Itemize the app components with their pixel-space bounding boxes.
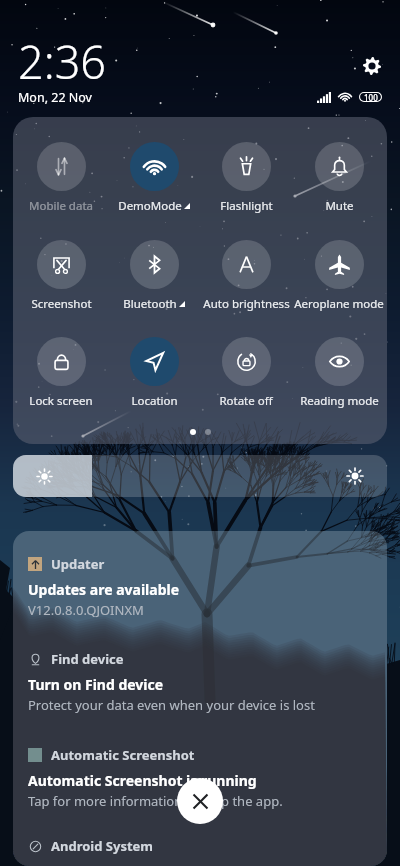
button[interactable]: Brightness — [13, 455, 387, 497]
staticText: Location — [131, 393, 178, 409]
staticText: Auto brightness — [203, 296, 290, 312]
button[interactable]: Close notifications — [177, 778, 223, 824]
staticText: Reading mode — [300, 393, 379, 409]
staticText: 2:36 — [18, 31, 107, 92]
staticText: Screenshot — [31, 296, 92, 312]
staticText: Aeroplane mode — [294, 296, 384, 312]
button[interactable]: Auto brightness — [201, 240, 291, 312]
button[interactable]: Screenshot — [16, 240, 106, 312]
staticText: Mon, 22 Nov — [18, 89, 92, 106]
staticText: Automatic Screenshot — [51, 746, 195, 764]
button[interactable]: Flashlight — [201, 142, 291, 214]
staticText: V12.0.8.0.QJOINXM — [28, 601, 144, 619]
button[interactable]: Aeroplane mode — [294, 240, 384, 312]
button[interactable]: Reading mode — [294, 337, 384, 409]
button[interactable]: Automatic Screenshot — [13, 746, 387, 810]
button[interactable]: Mobile data — [16, 142, 106, 214]
button[interactable]: Lock screen — [16, 337, 106, 409]
button[interactable]: Rotate off — [201, 337, 291, 409]
staticText: Updates are available — [28, 580, 180, 599]
staticText: Rotate off — [219, 393, 273, 409]
button[interactable]: Bluetooth — [109, 240, 199, 312]
staticText: DemoMode — [118, 198, 182, 214]
staticText: Protect your data even when your device … — [28, 696, 315, 714]
staticText: Tap for more information or stop the app… — [28, 792, 283, 810]
staticText: Updater — [51, 555, 105, 573]
staticText: Mute — [325, 198, 354, 214]
button[interactable]: DemoMode — [109, 142, 199, 214]
button[interactable]: Location — [109, 337, 199, 409]
button[interactable]: Mute — [294, 142, 384, 214]
button[interactable]: Find device — [13, 650, 387, 714]
staticText: Mobile data — [29, 198, 93, 214]
staticText: Bluetooth — [123, 296, 177, 312]
staticText: Flashlight — [220, 198, 273, 214]
staticText: Automatic Screenshot is running — [28, 771, 257, 790]
button[interactable]: Settings — [356, 50, 387, 81]
staticText: 100 — [364, 92, 378, 102]
staticText: Turn on Find device — [28, 675, 164, 694]
staticText: Android System — [51, 837, 154, 855]
staticText: Find device — [51, 650, 124, 668]
staticText: Lock screen — [29, 393, 93, 409]
button[interactable]: Updater — [13, 555, 387, 619]
button[interactable]: Android System — [13, 837, 387, 855]
